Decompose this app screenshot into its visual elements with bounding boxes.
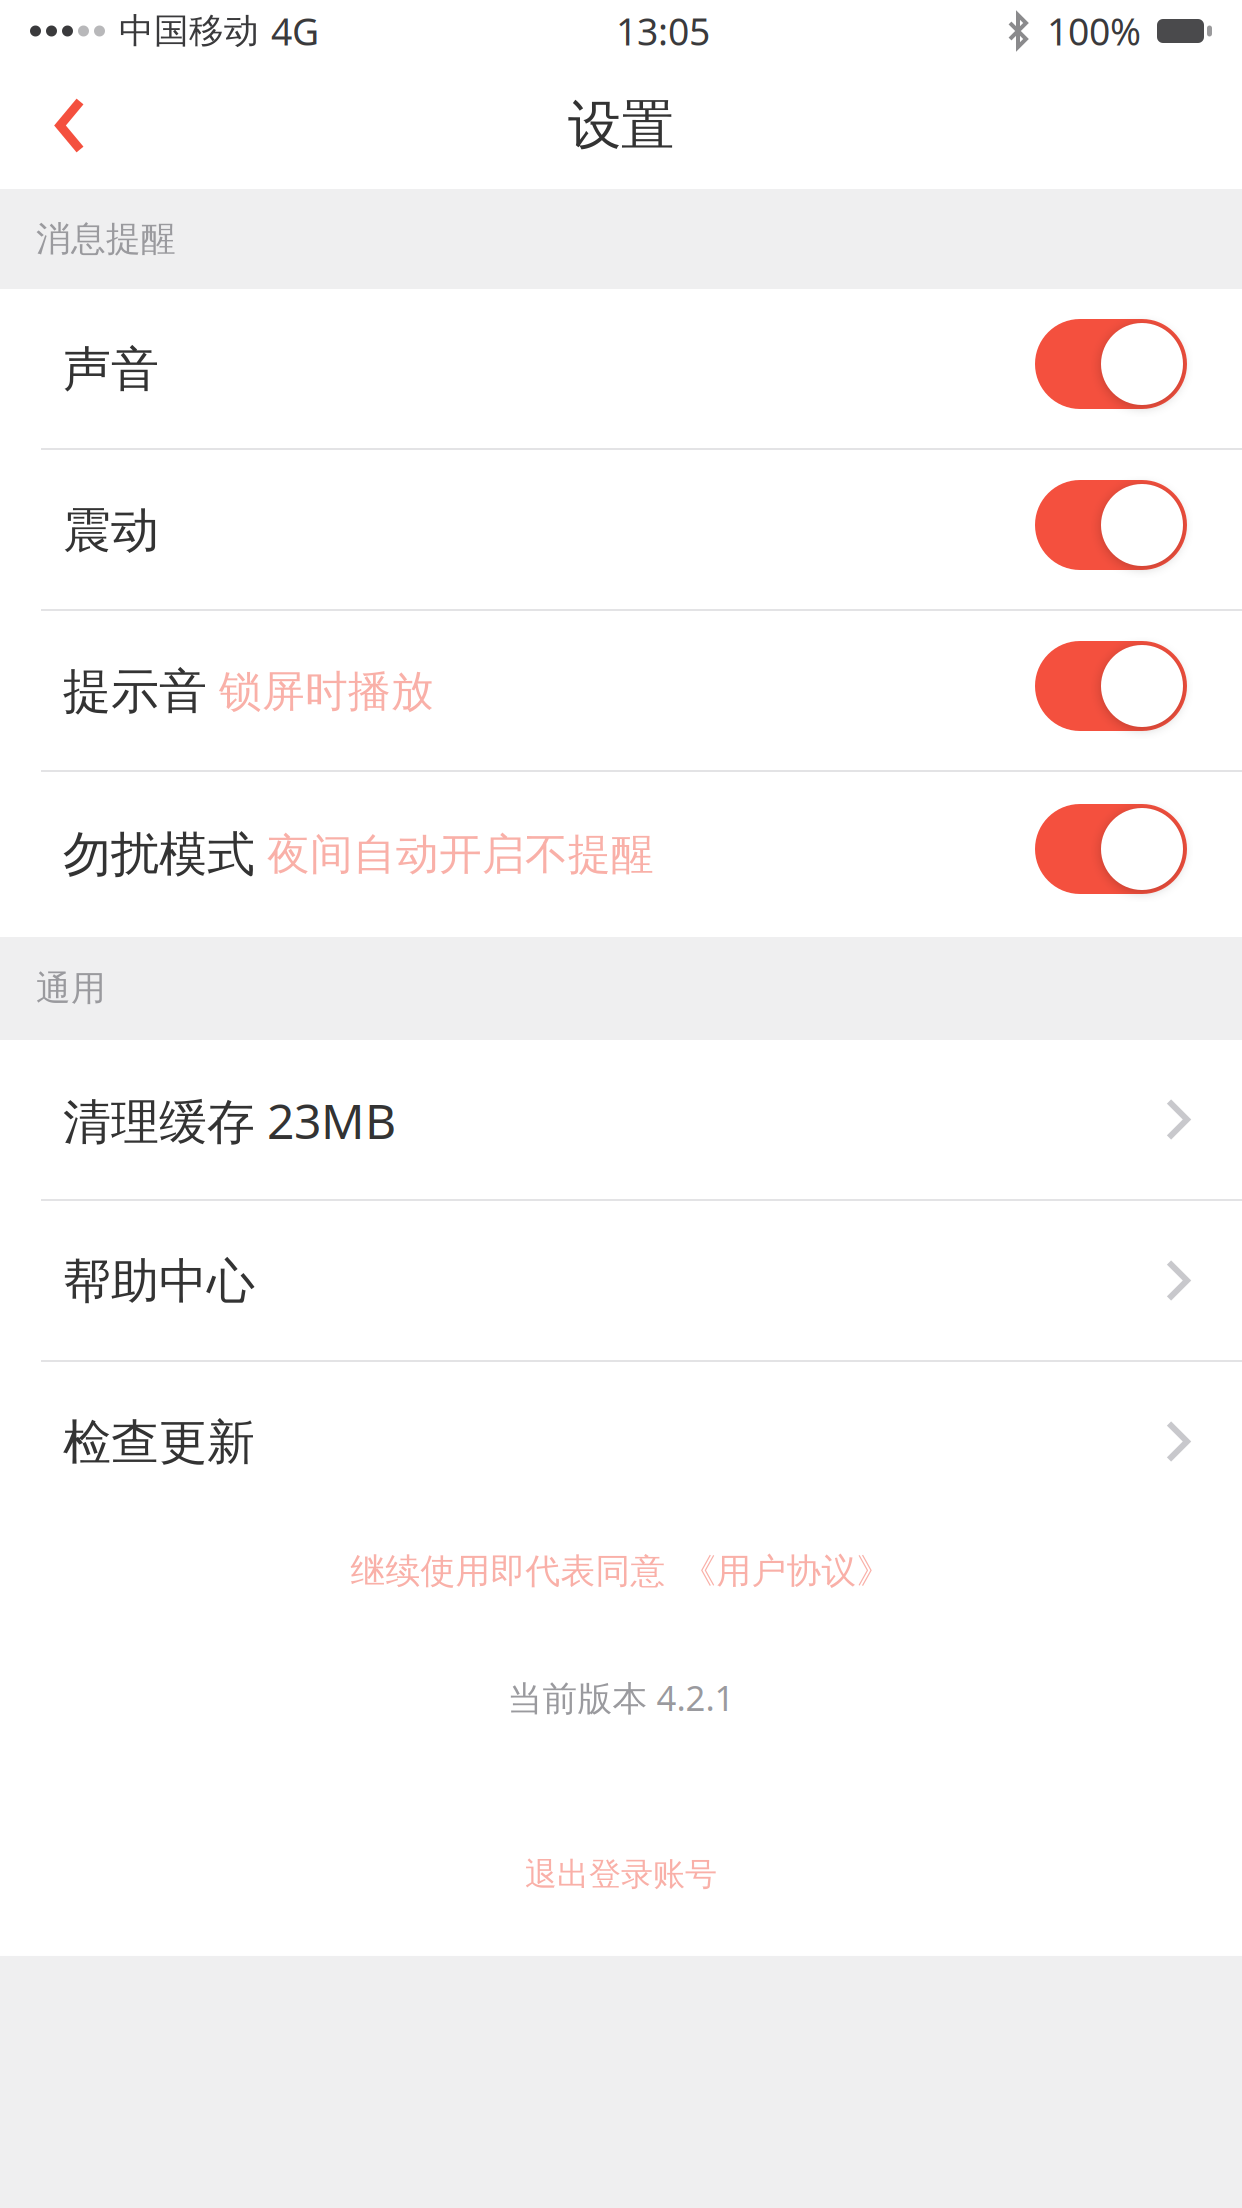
staticText: 震动 xyxy=(63,501,159,560)
button[interactable]: 清理缓存 23MB xyxy=(0,1040,1242,1201)
button[interactable]: 返回 xyxy=(0,62,118,189)
staticText: 中国移动 xyxy=(119,10,259,52)
button[interactable]: 帮助中心 xyxy=(0,1201,1242,1362)
staticText: 清理缓存 23MB xyxy=(63,1089,396,1152)
staticText: 检查更新 xyxy=(63,1413,255,1472)
button[interactable]: 震动 xyxy=(0,450,1242,611)
button[interactable]: 退出登录账号 xyxy=(525,1721,717,1956)
staticText: 100% xyxy=(1047,6,1141,56)
button[interactable]: 《用户协议》 xyxy=(665,1550,891,1593)
staticText: 消息提醒 xyxy=(36,218,176,260)
button[interactable]: 检查更新 xyxy=(0,1362,1242,1523)
staticText: 13:05 xyxy=(616,6,710,56)
staticText: 帮助中心 xyxy=(63,1252,255,1311)
button[interactable]: 提示音 xyxy=(0,611,1242,772)
staticText: 通用 xyxy=(36,967,106,1010)
staticText: 锁屏时播放 xyxy=(219,665,434,718)
staticText: 声音 xyxy=(63,340,159,399)
staticText: 继续使用即代表同意 xyxy=(350,1550,665,1593)
staticText: 4G xyxy=(271,6,319,56)
staticText: 当前版本 4.2.1 xyxy=(507,1675,734,1721)
staticText: 退出登录账号 xyxy=(525,1855,717,1894)
staticText: 设置 xyxy=(568,93,674,158)
staticText: 夜间自动开启不提醒 xyxy=(267,828,654,881)
staticText: 勿扰模式 xyxy=(63,825,255,884)
button[interactable]: 声音 xyxy=(0,289,1242,450)
button[interactable]: 勿扰模式 xyxy=(0,772,1242,937)
staticText: 提示音 xyxy=(63,662,207,721)
staticText: 《用户协议》 xyxy=(681,1550,891,1593)
